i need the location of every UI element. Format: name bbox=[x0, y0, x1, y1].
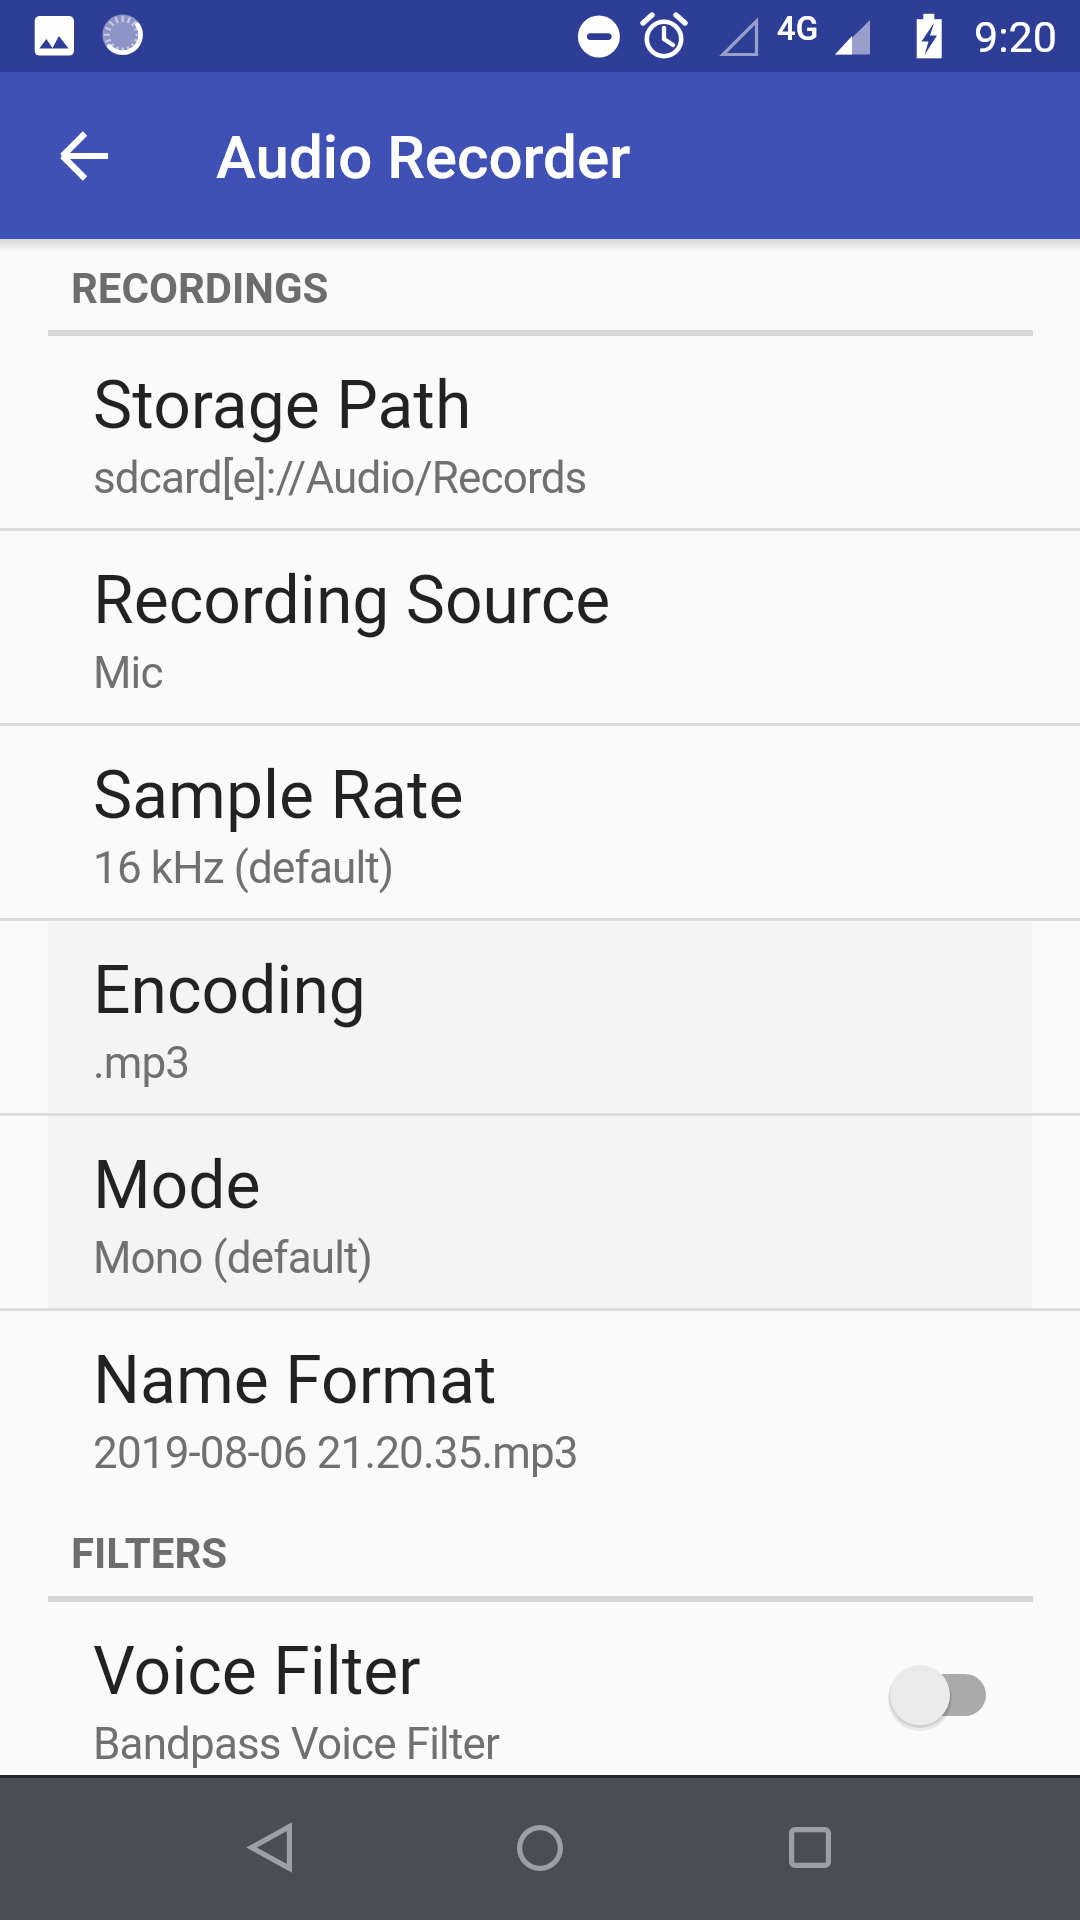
button[interactable]: Navigate up bbox=[36, 108, 132, 204]
button[interactable]: Name Format bbox=[0, 1311, 1080, 1503]
staticText: Mic bbox=[93, 647, 163, 699]
button[interactable]: Voice Filter toggle bbox=[890, 1653, 1032, 1737]
staticText: RECORDINGS bbox=[71, 264, 329, 313]
staticText: FILTERS bbox=[71, 1529, 228, 1578]
button[interactable]: Home bbox=[450, 1775, 630, 1920]
staticText: 16 kHz (default) bbox=[93, 842, 394, 894]
button[interactable]: Encoding bbox=[0, 921, 1080, 1113]
staticText: .mp3 bbox=[93, 1037, 190, 1089]
staticText: Storage Path bbox=[93, 367, 472, 444]
button[interactable]: Recording Source bbox=[0, 531, 1080, 723]
staticText: Audio Recorder bbox=[216, 122, 631, 192]
staticText: Sample Rate bbox=[93, 757, 464, 834]
button[interactable]: Storage Path bbox=[0, 336, 1080, 528]
staticText: Mode bbox=[93, 1147, 261, 1224]
staticText: Bandpass Voice Filter bbox=[93, 1718, 500, 1770]
staticText: Name Format bbox=[93, 1342, 497, 1419]
staticText: Encoding bbox=[93, 952, 366, 1029]
staticText: Recording Source bbox=[93, 562, 611, 639]
button[interactable]: Back bbox=[180, 1775, 360, 1920]
staticText: sdcard[e]://Audio/Records bbox=[93, 452, 587, 504]
staticText: Voice Filter bbox=[93, 1633, 421, 1710]
button[interactable]: Voice Filter bbox=[0, 1602, 1080, 1775]
button[interactable]: Sample Rate bbox=[0, 726, 1080, 918]
staticText: 4G bbox=[777, 9, 819, 48]
staticText: 9:20 bbox=[974, 12, 1057, 62]
button[interactable]: Recent apps bbox=[720, 1775, 900, 1920]
button[interactable]: Mode bbox=[0, 1116, 1080, 1308]
staticText: 2019-08-06 21.20.35.mp3 bbox=[93, 1427, 578, 1479]
staticText: Mono (default) bbox=[93, 1232, 373, 1284]
